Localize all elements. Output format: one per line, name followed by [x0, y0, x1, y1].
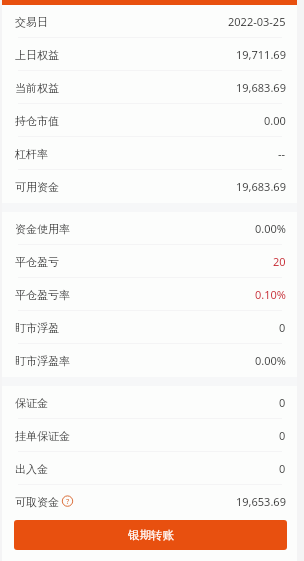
staticText: 19,683.69 — [236, 80, 286, 95]
staticText: 2022-03-25 — [228, 14, 286, 29]
staticText: 当前权益 — [15, 81, 59, 95]
staticText: 出入金 — [15, 462, 48, 476]
staticText: 19,683.69 — [236, 179, 286, 194]
button[interactable]: 平仓盈亏率 — [2, 278, 297, 311]
button[interactable]: 可取资金 — [2, 485, 297, 518]
staticText: 0.00 — [264, 113, 286, 128]
staticText: 0 — [279, 461, 286, 476]
staticText: 可取资金 — [15, 495, 59, 509]
staticText: 0.10% — [255, 287, 286, 302]
staticText: 0 — [279, 320, 286, 335]
button[interactable]: 当前权益 — [2, 71, 297, 104]
staticText: 可用资金 — [15, 180, 59, 194]
staticText: 银期转账 — [128, 528, 174, 542]
button[interactable]: 盯市浮盈 — [2, 311, 297, 344]
button[interactable]: 交易日 — [2, 5, 297, 38]
button[interactable]: 持仓市值 — [2, 104, 297, 137]
staticText: 盯市浮盈率 — [15, 354, 70, 368]
button[interactable]: 平仓盈亏 — [2, 245, 297, 278]
staticText: ? — [66, 496, 70, 506]
staticText: 0 — [279, 395, 286, 410]
button[interactable]: 可用资金 — [2, 170, 297, 203]
staticText: -- — [278, 146, 286, 161]
staticText: 盯市浮盈 — [15, 321, 59, 335]
staticText: 持仓市值 — [15, 114, 59, 128]
staticText: 19,653.69 — [236, 494, 286, 509]
staticText: 平仓盈亏率 — [15, 288, 70, 302]
button[interactable]: 杠杆率 — [2, 137, 297, 170]
staticText: 保证金 — [15, 396, 48, 410]
button[interactable]: 挂单保证金 — [2, 419, 297, 452]
button[interactable]: 帮助说明 — [62, 496, 73, 507]
staticText: 挂单保证金 — [15, 429, 70, 443]
staticText: 平仓盈亏 — [15, 255, 59, 269]
staticText: 资金使用率 — [15, 222, 70, 236]
button[interactable]: 上日权益 — [2, 38, 297, 71]
staticText: 上日权益 — [15, 48, 59, 62]
staticText: 0.00% — [255, 221, 286, 236]
staticText: 杠杆率 — [15, 147, 48, 161]
button[interactable]: 出入金 — [2, 452, 297, 485]
staticText: 19,711.69 — [236, 47, 286, 62]
button[interactable]: 资金使用率 — [2, 212, 297, 245]
staticText: 交易日 — [15, 15, 48, 29]
staticText: 0 — [279, 428, 286, 443]
button[interactable]: 盯市浮盈率 — [2, 344, 297, 377]
button[interactable]: 银期转账 — [14, 520, 287, 550]
staticText: 20 — [273, 254, 286, 269]
staticText: 0.00% — [255, 353, 286, 368]
button[interactable]: 保证金 — [2, 386, 297, 419]
